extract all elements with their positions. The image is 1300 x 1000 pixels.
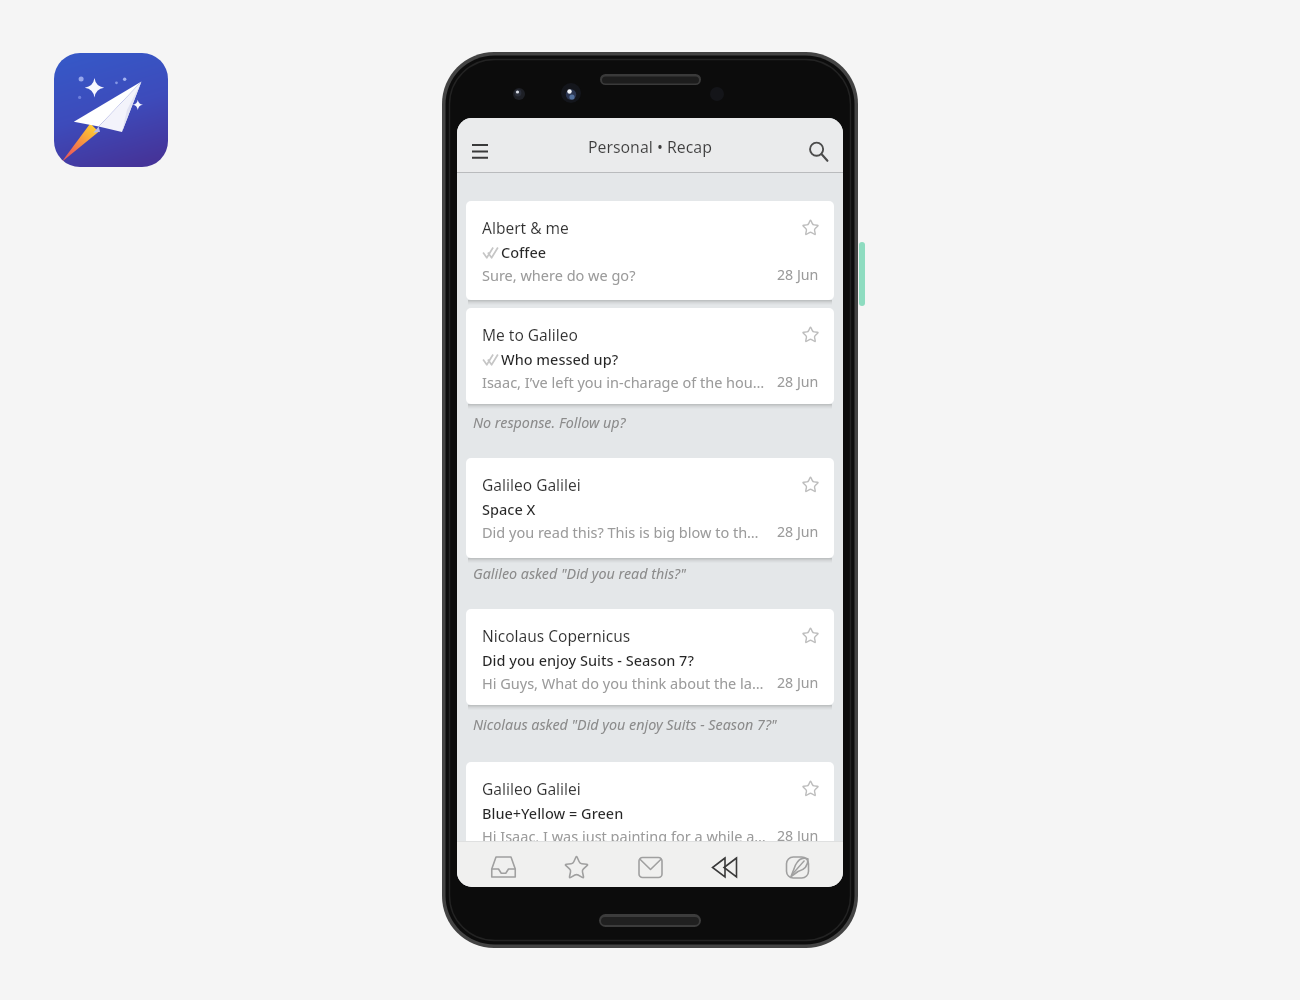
staticText: Galileo Galilei	[482, 778, 581, 799]
staticText: No response. Follow up?	[473, 413, 626, 432]
button[interactable]: Inbox	[475, 844, 531, 887]
staticText: 28 Jun	[777, 673, 819, 692]
button[interactable]: Menu	[458, 129, 502, 173]
button[interactable]: Galileo Galilei	[466, 762, 834, 861]
staticText: Albert & me	[482, 217, 569, 238]
staticText: Coffee	[501, 242, 547, 262]
button[interactable]: Snooze	[696, 844, 752, 887]
staticText: Who messed up?	[501, 349, 619, 369]
button[interactable]: Mail	[622, 844, 678, 887]
staticText: Sure, where do we go?	[482, 265, 768, 285]
staticText: 28 Jun	[777, 372, 819, 391]
staticText: 28 Jun	[777, 826, 819, 845]
staticText: Me to Galileo	[482, 324, 578, 345]
button[interactable]: Search	[796, 129, 840, 173]
staticText: Galileo Galilei	[482, 474, 581, 495]
staticText: Did you enjoy Suits - Season 7?	[482, 650, 694, 670]
button[interactable]: Nicolaus Copernicus	[466, 609, 834, 705]
staticText: Isaac, I’ve left you in-charage of the h…	[482, 372, 768, 392]
staticText: Hi Guys, What do you think about the la…	[482, 673, 768, 693]
staticText: Nicolaus Copernicus	[482, 625, 631, 646]
button[interactable]: Albert & me	[466, 201, 834, 300]
staticText: Hi Isaac, I was just painting for a whil…	[482, 826, 768, 846]
button[interactable]: Galileo Galilei	[466, 458, 834, 558]
staticText: Did you read this? This is big blow to t…	[482, 522, 768, 542]
staticText: Space X	[482, 499, 536, 519]
staticText: 28 Jun	[777, 265, 819, 284]
staticText: Galileo asked "Did you read this?"	[473, 564, 686, 583]
staticText: Nicolaus asked "Did you enjoy Suits - Se…	[473, 715, 777, 734]
button[interactable]: Starred	[548, 844, 604, 887]
button[interactable]: Spark mail app icon	[54, 53, 168, 167]
button[interactable]: Compose	[769, 844, 825, 887]
staticText: Personal • Recap	[588, 136, 712, 158]
staticText: Blue+Yellow = Green	[482, 803, 624, 823]
staticText: 28 Jun	[777, 522, 819, 541]
button[interactable]: Me to Galileo	[466, 308, 834, 404]
